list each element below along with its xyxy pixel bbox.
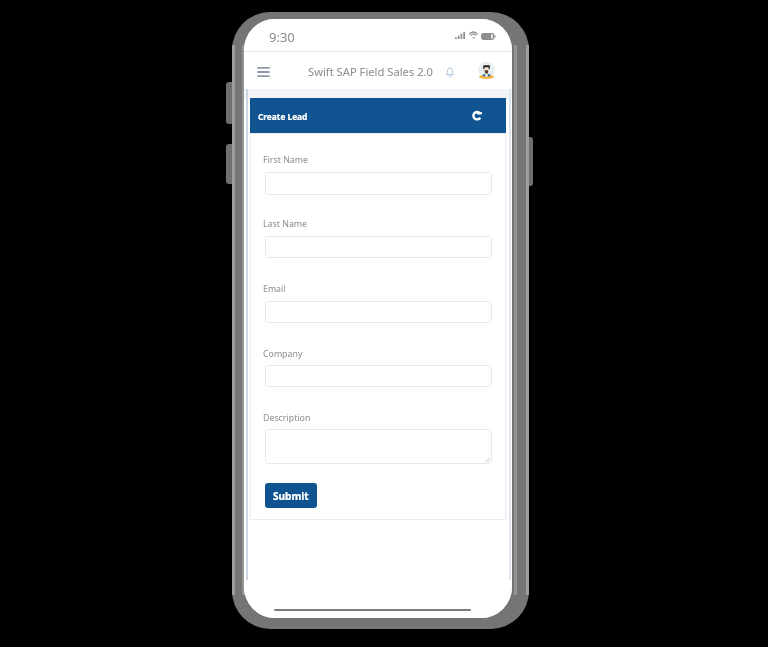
button[interactable]: Refresh [468, 106, 487, 125]
button[interactable]: Profile [478, 62, 495, 79]
button[interactable]: Company [265, 365, 492, 387]
button[interactable]: Description [265, 429, 492, 464]
staticText: Email [263, 283, 286, 295]
button[interactable]: Submit [265, 483, 317, 508]
button[interactable]: Last Name [265, 236, 492, 258]
button[interactable]: Email [265, 301, 492, 323]
staticText: Description [263, 412, 311, 424]
staticText: Last Name [263, 218, 308, 230]
staticText: Create Lead [258, 111, 308, 122]
button[interactable]: Notifications [440, 62, 460, 82]
staticText: Submit [273, 489, 309, 503]
staticText: 9:30 [269, 28, 295, 46]
staticText: First Name [263, 154, 308, 166]
staticText: Swift SAP Field Sales 2.0 [308, 64, 433, 79]
button[interactable]: Menu [252, 61, 274, 83]
button[interactable]: First Name [265, 172, 492, 195]
staticText: Company [263, 348, 303, 360]
